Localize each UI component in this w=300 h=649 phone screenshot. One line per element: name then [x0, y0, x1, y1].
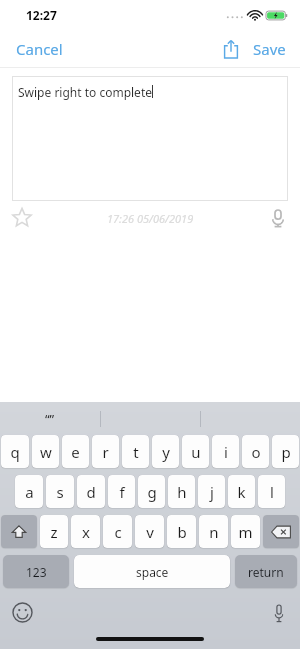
- button[interactable]: f: [108, 475, 135, 508]
- button[interactable]: Swipe right to complete: [12, 76, 288, 201]
- staticText: return: [248, 564, 284, 580]
- staticText: h: [177, 482, 187, 502]
- staticText: 17:26 05/06/2019: [107, 211, 194, 226]
- staticText: b: [177, 522, 187, 542]
- button[interactable]: a: [15, 475, 43, 508]
- staticText: j: [210, 482, 214, 502]
- staticText: o: [251, 442, 261, 462]
- button[interactable]: e: [62, 435, 89, 468]
- button[interactable]: u: [182, 435, 209, 468]
- button[interactable]: m: [231, 515, 260, 548]
- button[interactable]: Share: [215, 35, 247, 63]
- staticText: x: [82, 522, 90, 542]
- staticText: y: [162, 442, 170, 462]
- staticText: k: [237, 482, 246, 502]
- staticText: s: [56, 482, 64, 502]
- button[interactable]: d: [77, 475, 105, 508]
- staticText: g: [147, 482, 157, 502]
- button[interactable]: c: [103, 515, 132, 548]
- button[interactable]: r: [92, 435, 119, 468]
- button[interactable]: Backspace: [263, 515, 299, 548]
- staticText: q: [10, 442, 20, 462]
- button[interactable]: Emoji: [12, 602, 33, 623]
- staticText: “”: [45, 411, 55, 427]
- button[interactable]: k: [228, 475, 255, 508]
- button[interactable]: z: [40, 515, 68, 548]
- staticText: m: [238, 522, 253, 542]
- button[interactable]: y: [152, 435, 179, 468]
- staticText: Swipe right to complete: [18, 84, 152, 100]
- staticText: z: [50, 522, 58, 542]
- button[interactable]: Shift: [1, 515, 37, 548]
- button[interactable]: o: [242, 435, 269, 468]
- staticText: v: [146, 522, 154, 542]
- button[interactable]: x: [71, 515, 100, 548]
- button[interactable]: s: [46, 475, 74, 508]
- staticText: d: [86, 482, 96, 502]
- staticText: Save: [253, 39, 286, 59]
- button[interactable]: n: [199, 515, 228, 548]
- button[interactable]: return: [235, 555, 297, 588]
- button[interactable]: Favourite: [10, 206, 34, 230]
- staticText: u: [191, 442, 201, 462]
- button[interactable]: q: [1, 435, 29, 468]
- staticText: i: [224, 442, 228, 462]
- button[interactable]: Dictate: [272, 603, 286, 623]
- button[interactable]: space: [74, 555, 230, 588]
- button[interactable]: v: [135, 515, 164, 548]
- button[interactable]: “”: [0, 402, 100, 435]
- staticText: e: [71, 442, 80, 462]
- staticText: f: [119, 482, 125, 502]
- staticText: t: [133, 442, 139, 462]
- staticText: a: [25, 482, 34, 502]
- button[interactable]: w: [32, 435, 59, 468]
- button[interactable]: Save: [247, 33, 300, 65]
- button[interactable]: g: [138, 475, 165, 508]
- staticText: Cancel: [16, 39, 63, 59]
- staticText: r: [102, 442, 109, 462]
- staticText: c: [114, 522, 122, 542]
- button[interactable]: j: [198, 475, 225, 508]
- button[interactable]: h: [168, 475, 195, 508]
- button[interactable]: Cancel: [0, 33, 79, 65]
- staticText: 123: [26, 564, 47, 580]
- button[interactable]: t: [122, 435, 149, 468]
- button[interactable]: i: [212, 435, 239, 468]
- staticText: space: [136, 564, 169, 580]
- button[interactable]: Voice input: [268, 208, 288, 228]
- staticText: 12:27: [26, 7, 57, 23]
- staticText: p: [281, 442, 291, 462]
- staticText: n: [209, 522, 219, 542]
- button[interactable]: p: [272, 435, 299, 468]
- staticText: l: [270, 482, 274, 502]
- button[interactable]: b: [167, 515, 196, 548]
- button[interactable]: 123: [3, 555, 69, 588]
- button[interactable]: l: [258, 475, 285, 508]
- staticText: w: [40, 442, 52, 462]
